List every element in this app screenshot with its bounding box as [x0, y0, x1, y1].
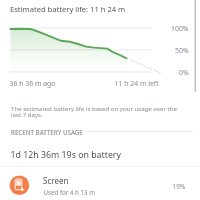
- button[interactable]: Battery usage: [0, 0, 200, 200]
